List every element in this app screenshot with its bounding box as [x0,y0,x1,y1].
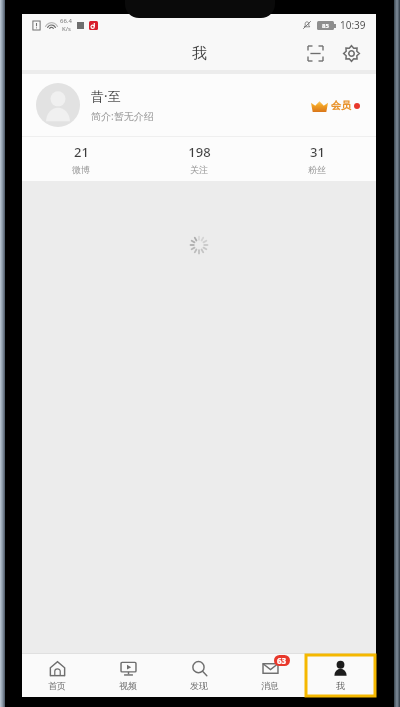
staticText: K/s [62,25,71,33]
button[interactable]: 首页 [22,654,92,697]
button[interactable]: 会员 [309,95,362,116]
staticText: 关注 [190,164,208,175]
staticText: 198 [188,143,211,161]
button[interactable]: 我 [306,655,375,696]
button[interactable]: 198 [140,137,258,181]
button[interactable]: 21 [22,137,140,181]
button[interactable]: Scan QR code [302,40,328,66]
staticText: 粉丝 [308,164,326,175]
staticText: 我 [192,44,207,63]
staticText: 我 [336,680,345,691]
button[interactable]: 发现 [163,654,234,697]
staticText: 简介:暂无介绍 [91,109,154,123]
button[interactable]: 31 [258,137,376,181]
staticText: 视频 [119,680,137,691]
staticText: 10:39 [340,18,366,32]
button[interactable]: Settings [338,40,364,66]
button[interactable]: 63 [234,654,305,697]
staticText: 63 [277,655,287,666]
button[interactable]: 昔·至 [22,74,376,136]
staticText: 发现 [190,680,208,691]
staticText: 消息 [261,680,279,691]
button[interactable]: 视频 [92,654,163,697]
staticText: 31 [310,143,325,161]
staticText: 昔·至 [91,87,121,105]
staticText: 21 [74,143,89,161]
staticText: 微博 [72,164,90,175]
staticText: 首页 [48,680,66,691]
staticText: 会员 [331,99,351,112]
staticText: 66.4 [60,17,72,25]
staticText: 85 [322,22,329,30]
